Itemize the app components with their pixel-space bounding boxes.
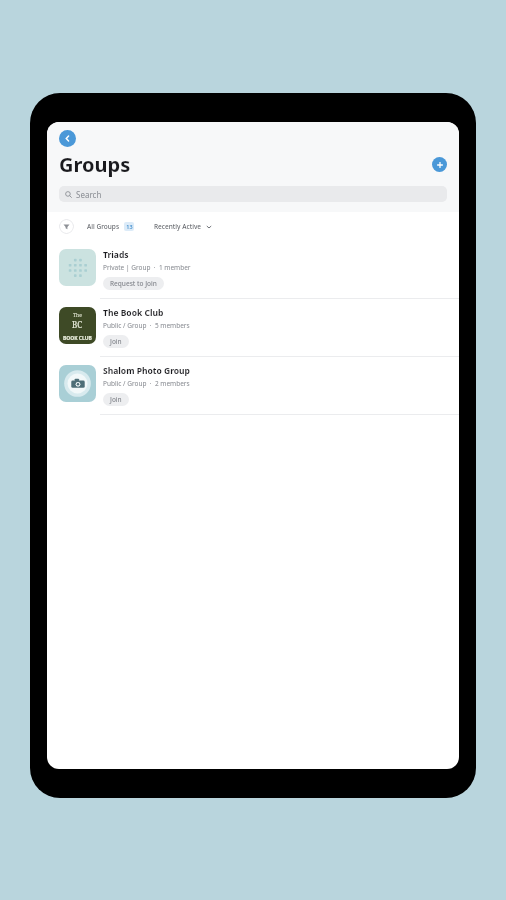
button[interactable]: The (47, 299, 459, 356)
button[interactable]: Join (103, 335, 129, 348)
button[interactable]: Search (59, 186, 447, 202)
staticText: Public / Group · 2 members (103, 379, 190, 388)
staticText: All Groups (87, 222, 120, 231)
staticText: Join (110, 395, 122, 404)
staticText: The Book Club (103, 307, 164, 319)
button[interactable]: Filter (59, 219, 74, 234)
button[interactable]: Request to Join (103, 277, 164, 290)
button[interactable]: Triads (47, 241, 459, 298)
button[interactable]: Back (59, 130, 76, 147)
staticText: Join (110, 337, 122, 346)
staticText: BC (72, 319, 83, 330)
staticText: The (73, 312, 82, 319)
button[interactable]: Recently Active (147, 219, 219, 234)
staticText: 13 (126, 223, 133, 230)
button[interactable]: Shalom Photo Group (47, 357, 459, 414)
button[interactable]: Join (103, 393, 129, 406)
staticText: Search (76, 189, 102, 200)
staticText: Request to Join (110, 279, 157, 288)
staticText: Shalom Photo Group (103, 365, 190, 377)
staticText: Groups (59, 151, 131, 178)
staticText: Triads (103, 249, 129, 261)
button[interactable]: Create group (432, 157, 447, 172)
button[interactable]: All Groups (80, 219, 141, 234)
staticText: Private | Group · 1 member (103, 263, 191, 272)
staticText: Public / Group · 5 members (103, 321, 190, 330)
staticText: BOOK CLUB (63, 335, 92, 342)
staticText: Recently Active (154, 222, 202, 231)
